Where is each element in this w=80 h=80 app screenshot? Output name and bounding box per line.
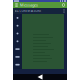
button[interactable]: Channel [13, 22, 22, 30]
button[interactable]: Channel [13, 61, 22, 69]
staticText: Messages [20, 2, 38, 8]
button[interactable]: Channel [13, 37, 22, 45]
staticText: ALL CONVERSATIONS [14, 9, 40, 13]
button[interactable]: Search [61, 3, 65, 7]
button[interactable]: Channel [13, 53, 22, 61]
button[interactable]: Channel [13, 45, 22, 53]
button[interactable]: Back [37, 74, 42, 80]
button[interactable]: More [62, 9, 65, 13]
button[interactable]: Channel [13, 14, 22, 22]
button[interactable]: Menu [14, 3, 18, 7]
button[interactable]: Channel [13, 30, 22, 37]
